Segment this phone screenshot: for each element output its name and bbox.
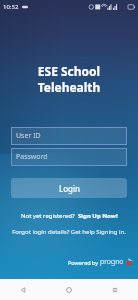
staticText: Password <box>16 152 48 162</box>
button[interactable]: Recents <box>92 279 138 300</box>
button[interactable]: Home <box>46 279 92 300</box>
staticText: ESE School Telehealth <box>11 63 127 95</box>
staticText: Login <box>59 183 80 194</box>
button[interactable]: User ID <box>11 127 127 145</box>
staticText: Forgot login details? Get help Signing i… <box>12 228 126 236</box>
staticText: Powered by <box>68 259 100 266</box>
staticText: progno <box>100 257 124 267</box>
staticText: User ID <box>16 131 41 141</box>
button[interactable]: Forgot login details? Get help Signing i… <box>12 228 126 236</box>
staticText: 10:52 <box>3 3 19 11</box>
button[interactable]: Back <box>0 279 46 300</box>
button[interactable]: Not yet registered? <box>21 212 118 220</box>
button[interactable]: Login <box>11 178 127 198</box>
button[interactable]: Password <box>11 148 127 166</box>
staticText: Not yet registered? <box>21 212 78 220</box>
staticText: Sign Up Now! <box>78 212 118 220</box>
